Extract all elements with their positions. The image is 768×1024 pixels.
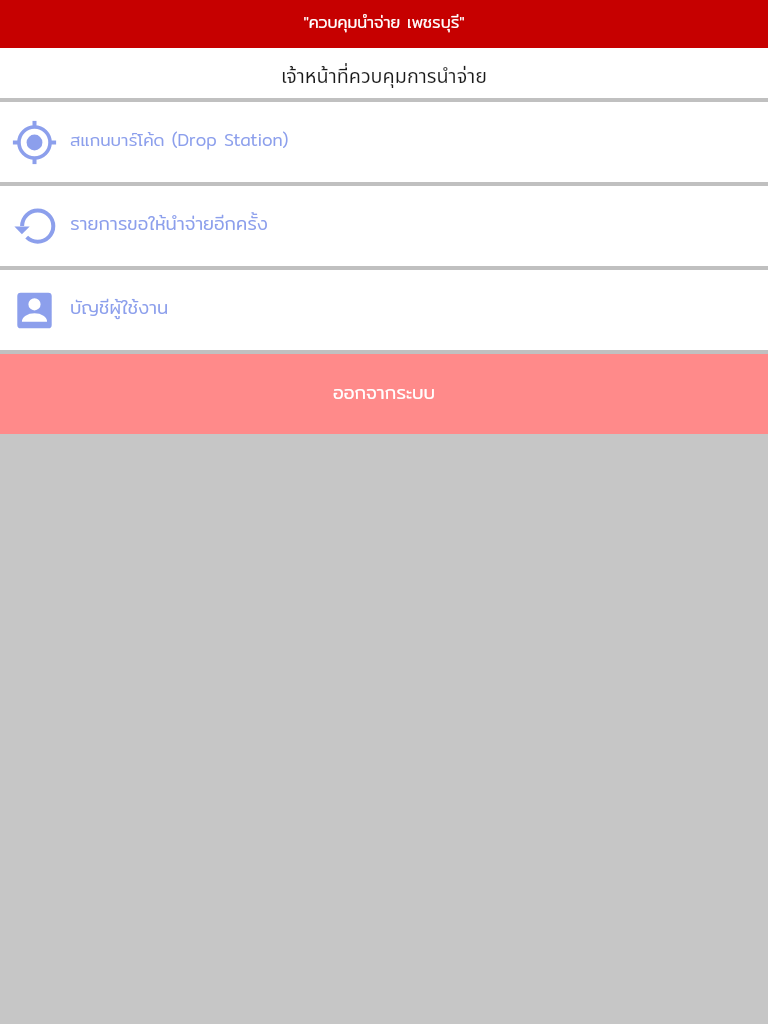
- button[interactable]: ออกจากระบบ: [0, 354, 768, 434]
- staticText: รายการขอให้นำจ่ายอีกครั้ง: [70, 209, 268, 238]
- other: Redelivery request list: [12, 204, 57, 249]
- button[interactable]: Redelivery request list: [0, 186, 768, 266]
- other: Scan barcode, drop station: [12, 120, 57, 165]
- staticText: สแกนบาร์โค้ด (Drop Station): [70, 126, 289, 153]
- button[interactable]: Scan barcode, drop station: [0, 102, 768, 182]
- staticText: เจ้าหน้าที่ควบคุมการนำจ่าย: [281, 62, 487, 92]
- other: User account: [12, 288, 57, 333]
- staticText: ออกจากระบบ: [333, 378, 436, 407]
- button[interactable]: User account: [0, 270, 768, 350]
- staticText: "ควบคุมนำจ่าย เพชรบุรี": [303, 9, 465, 34]
- staticText: บัญชีผู้ใช้งาน: [70, 293, 169, 322]
